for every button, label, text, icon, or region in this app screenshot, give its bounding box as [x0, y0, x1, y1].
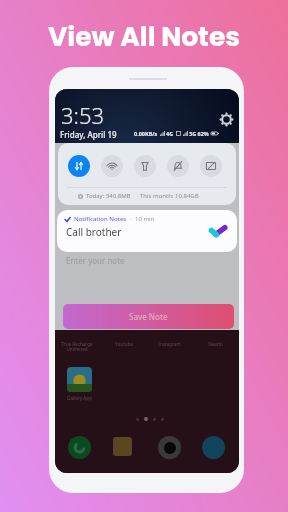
staticText: This month: 10.84GB — [140, 192, 199, 200]
staticText: 10 min — [135, 215, 155, 223]
button[interactable]: Notification Notes — [57, 210, 237, 252]
staticText: Today: 340.8MB — [86, 192, 131, 200]
staticText: Notification Notes — [74, 215, 127, 223]
button[interactable]: Settings — [220, 113, 233, 126]
staticText: Instagram — [158, 341, 181, 347]
staticText: Nearbi — [208, 341, 223, 347]
button[interactable]: Cast — [200, 155, 222, 177]
button[interactable]: Save Note — [63, 304, 234, 329]
staticText: True Recharge Unlimited — [61, 341, 93, 352]
button[interactable]: Flashlight — [134, 155, 156, 177]
staticText: View All Notes — [0, 18, 288, 55]
staticText: Youtube — [115, 341, 133, 347]
staticText: Friday, April 19 — [60, 129, 117, 140]
staticText: Gallery App — [67, 395, 92, 401]
button[interactable]: Silent — [167, 155, 189, 177]
staticText: Enter your note — [66, 255, 125, 266]
staticText: 0.00KB/s — [134, 130, 158, 137]
button[interactable]: Wi-Fi — [101, 155, 123, 177]
staticText: Save Note — [129, 311, 168, 322]
staticText: 4G — [166, 130, 174, 137]
staticText: Call brother — [66, 225, 122, 239]
staticText: · — [130, 215, 132, 223]
button[interactable]: Mobile data — [68, 155, 90, 177]
staticText: 3:53 — [61, 100, 105, 130]
staticText: 3G 62% — [189, 130, 209, 137]
